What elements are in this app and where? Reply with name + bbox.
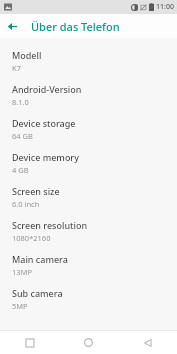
staticText: Über das Telefon	[31, 19, 120, 34]
button[interactable]: Main camera	[0, 248, 177, 282]
staticText: Device memory	[12, 151, 79, 163]
staticText: 64 GB	[12, 131, 33, 141]
button[interactable]: Device storage	[0, 112, 177, 146]
button[interactable]: Screen size	[0, 180, 177, 214]
staticText: Screen resolution	[12, 219, 88, 231]
staticText: Modell	[12, 49, 42, 61]
staticText: 13MP	[12, 267, 32, 277]
button[interactable]: Android-Version	[0, 78, 177, 112]
staticText: Android-Version	[12, 83, 82, 95]
button[interactable]: Home	[59, 331, 118, 354]
staticText: Device storage	[12, 117, 76, 129]
button[interactable]: Recent apps	[0, 331, 59, 354]
button[interactable]: Sub camera	[0, 282, 177, 316]
button[interactable]: Modell	[0, 44, 177, 78]
staticText: Main camera	[12, 253, 68, 265]
button[interactable]: Screen resolution	[0, 214, 177, 248]
staticText: 4 GB	[12, 165, 29, 175]
staticText: Sub camera	[12, 287, 63, 299]
staticText: 11:00	[156, 2, 174, 12]
button[interactable]: Device memory	[0, 146, 177, 180]
staticText: 5MP	[12, 301, 28, 311]
staticText: 1080*2160	[12, 233, 51, 243]
staticText: 8.1.0	[12, 97, 29, 107]
staticText: K7	[12, 63, 21, 73]
staticText: 6.0 inch	[12, 199, 40, 209]
button[interactable]: Back	[0, 14, 24, 38]
staticText: Screen size	[12, 185, 60, 197]
button[interactable]: Back	[118, 331, 177, 354]
